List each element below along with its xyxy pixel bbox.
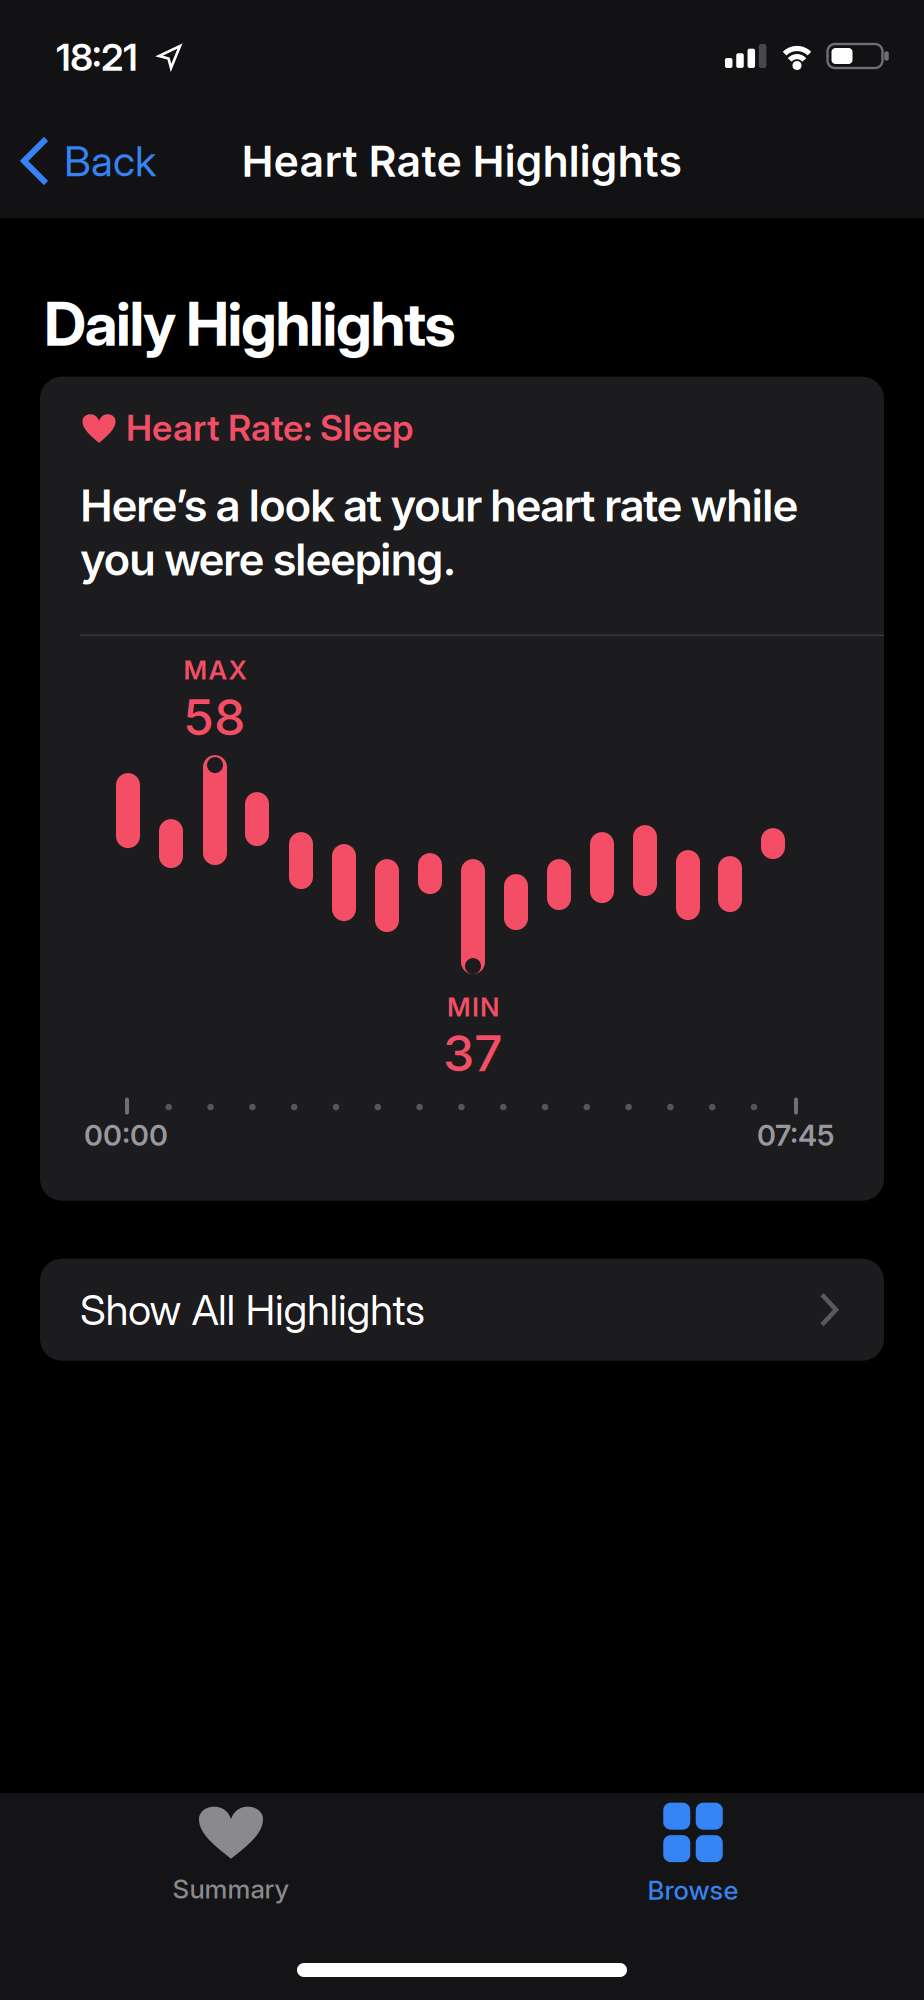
staticText: 07:45 (757, 1118, 835, 1152)
staticText: MAX (183, 655, 246, 685)
staticText: Heart Rate: Sleep (126, 407, 413, 448)
staticText: 37 (443, 1024, 503, 1082)
button[interactable]: Back (20, 136, 156, 186)
button[interactable]: Heart Rate: Sleep (40, 377, 884, 1201)
staticText: Browse (647, 1875, 738, 1905)
staticText: 00:00 (84, 1118, 168, 1152)
staticText: Daily Highlights (44, 289, 455, 359)
staticText: Show All Highlights (80, 1285, 425, 1334)
staticText: 58 (183, 688, 245, 746)
button[interactable]: Show All Highlights (40, 1259, 884, 1361)
staticText: Heart Rate Highlights (241, 136, 682, 186)
staticText: Back (64, 137, 156, 185)
staticText: MIN (447, 992, 499, 1022)
button[interactable]: Browse (647, 1803, 738, 1905)
staticText: 18:21 (56, 35, 138, 79)
staticText: Summary (172, 1874, 289, 1904)
button[interactable]: Summary (172, 1802, 289, 1904)
staticText: Here’s a look at your heart rate while y… (80, 478, 798, 587)
